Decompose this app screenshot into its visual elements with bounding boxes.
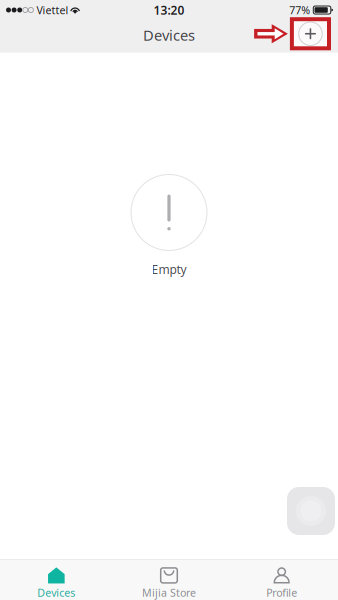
staticText: 77%	[289, 3, 310, 17]
button[interactable]: Devices	[0, 556, 113, 600]
button[interactable]: Profile	[225, 556, 338, 600]
button[interactable]: Mijia Store	[113, 556, 225, 600]
staticText: Devices	[143, 25, 195, 45]
staticText: Profile	[266, 585, 297, 600]
button[interactable]: AssistiveTouch	[287, 487, 335, 535]
staticText: Viettel	[36, 3, 68, 17]
button[interactable]: Add device	[292, 19, 329, 48]
staticText: Devices	[37, 585, 75, 600]
staticText: 13:20	[153, 2, 184, 18]
staticText: Mijia Store	[142, 585, 196, 600]
staticText: Empty	[151, 261, 186, 277]
